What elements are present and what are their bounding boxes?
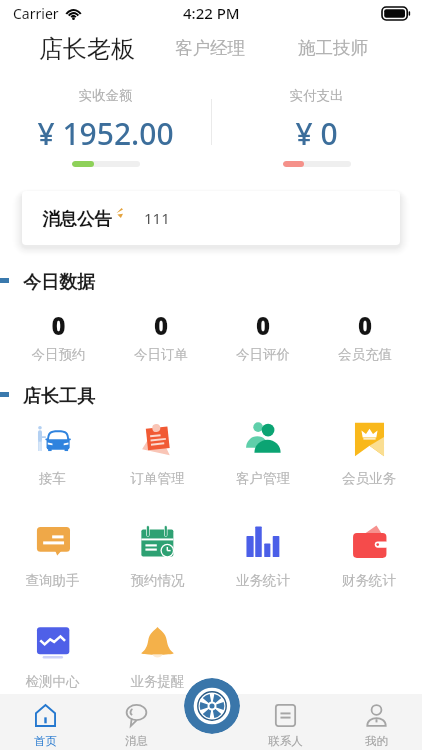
button[interactable]: 检测中心 [0,624,105,659]
staticText: 会员充值 [314,346,416,363]
staticText: 业务提醒 [105,673,210,690]
button[interactable]: 施工技师 [298,37,368,59]
staticText: 0 [212,309,314,342]
button[interactable]: 我的 [331,694,422,750]
staticText: 施工技师 [298,37,368,59]
button[interactable]: 首页 [0,694,91,750]
button[interactable]: 0 [110,300,212,333]
staticText: 我的 [331,734,422,748]
staticText: 店长工具 [23,385,95,408]
button[interactable]: 实收金额 [0,0,211,175]
button[interactable]: 店长老板 [39,34,135,64]
staticText: 0 [110,309,212,342]
button[interactable]: 客户管理 [210,421,316,456]
button[interactable]: Tire service [184,678,240,734]
button[interactable]: 业务统计 [210,523,316,558]
button[interactable]: 实付支出 [211,0,422,175]
staticText: 查询助手 [0,572,105,589]
staticText: 今日订单 [110,346,212,363]
staticText: 111 [144,208,170,228]
staticText: 联系人 [240,734,331,748]
button[interactable]: 0 [7,300,110,333]
staticText: 0 [7,309,110,342]
staticText: 0 [314,309,416,342]
button[interactable]: 订单管理 [105,421,210,456]
staticText: 客户管理 [210,470,316,487]
staticText: 接车 [0,470,105,487]
button[interactable]: 接车 [0,421,105,456]
staticText: ¥ 0 [211,113,422,154]
staticText: 实付支出 [211,87,422,104]
staticText: 消息 [91,734,182,748]
staticText: 财务统计 [316,572,422,589]
button[interactable]: 联系人 [240,694,331,750]
button[interactable]: 查询助手 [0,523,105,558]
staticText: 检测中心 [0,673,105,690]
staticText: 客户经理 [175,37,245,59]
staticText: 预约情况 [105,572,210,589]
staticText: 4:22 PM [183,3,240,23]
staticText: 首页 [0,734,91,748]
staticText: 今日预约 [7,346,110,363]
staticText: 今日数据 [23,271,95,294]
button[interactable]: 客户经理 [175,37,245,59]
staticText: 今日评价 [212,346,314,363]
staticText: 消息公告 [42,208,112,230]
button[interactable]: 消息 [91,694,182,750]
button[interactable]: 0 [314,300,416,333]
button[interactable]: 业务提醒 [105,624,210,659]
button[interactable]: 消息公告 [22,191,400,245]
button[interactable]: 财务统计 [316,523,422,558]
staticText: 业务统计 [210,572,316,589]
button[interactable]: 0 [212,300,314,333]
button[interactable]: 会员业务 [316,421,422,456]
staticText: Carrier [13,4,59,23]
staticText: ¥ 1952.00 [0,113,211,154]
staticText: 实收金额 [0,87,211,104]
staticText: 店长老板 [39,34,135,64]
button[interactable]: 预约情况 [105,523,210,558]
staticText: 会员业务 [316,470,422,487]
staticText: 订单管理 [105,470,210,487]
